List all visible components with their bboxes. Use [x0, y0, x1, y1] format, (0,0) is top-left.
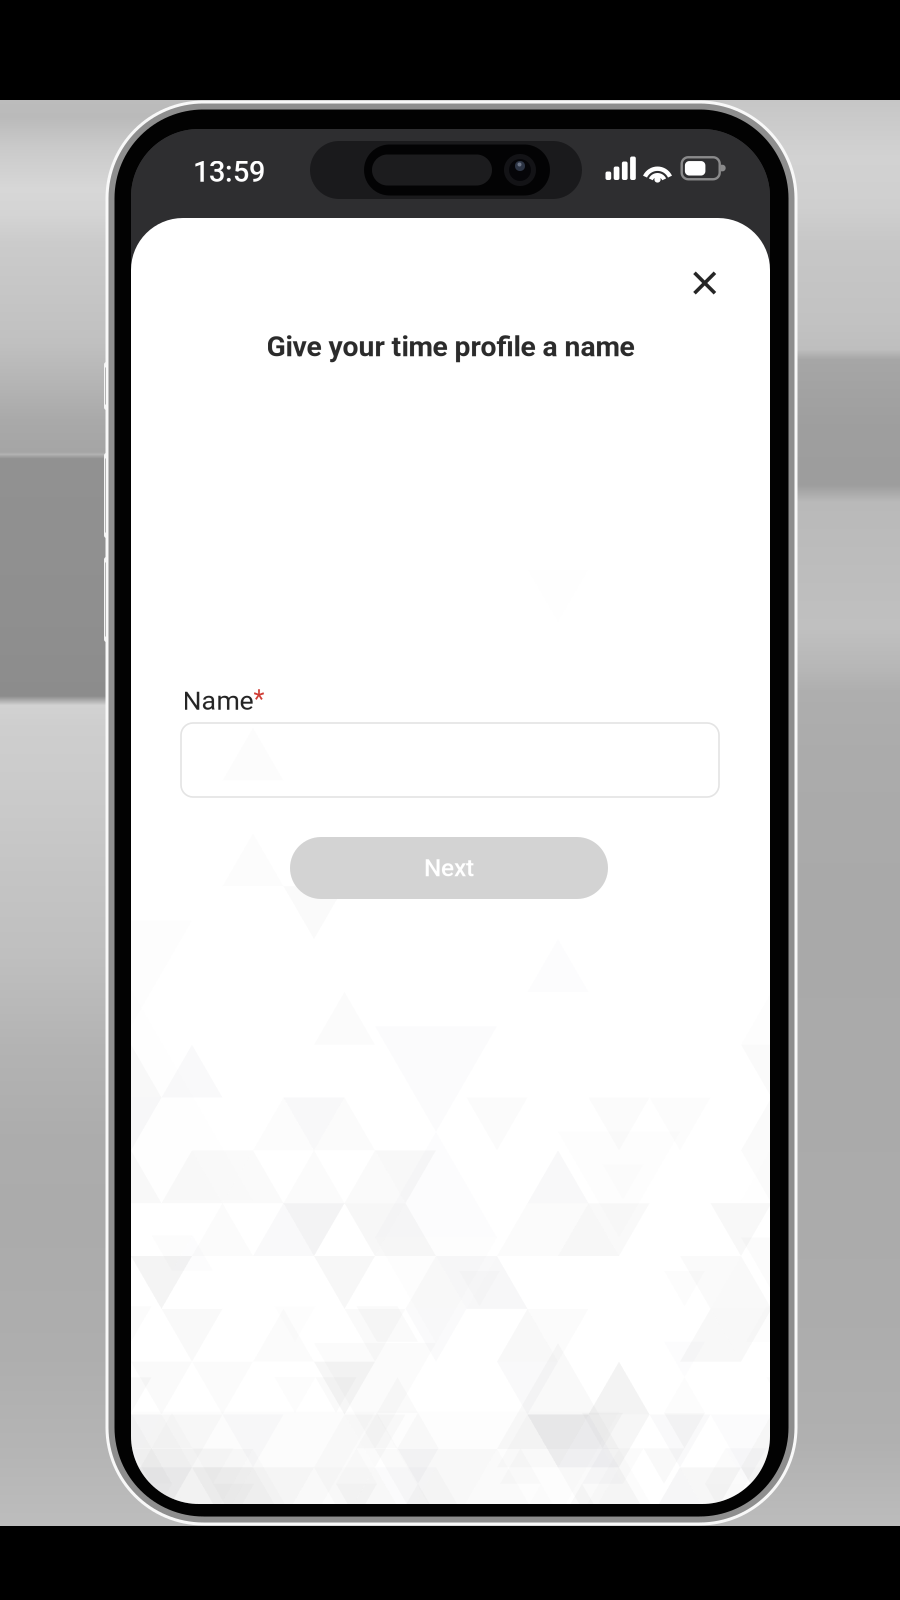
staticText: Name: [182, 685, 253, 716]
staticText: *: [253, 685, 264, 714]
button[interactable]: Close: [674, 252, 736, 314]
button[interactable]: Next: [290, 837, 608, 899]
staticText: Next: [424, 854, 474, 882]
staticText: 13:59: [193, 155, 265, 189]
staticText: Give your time profile a name: [266, 330, 634, 363]
